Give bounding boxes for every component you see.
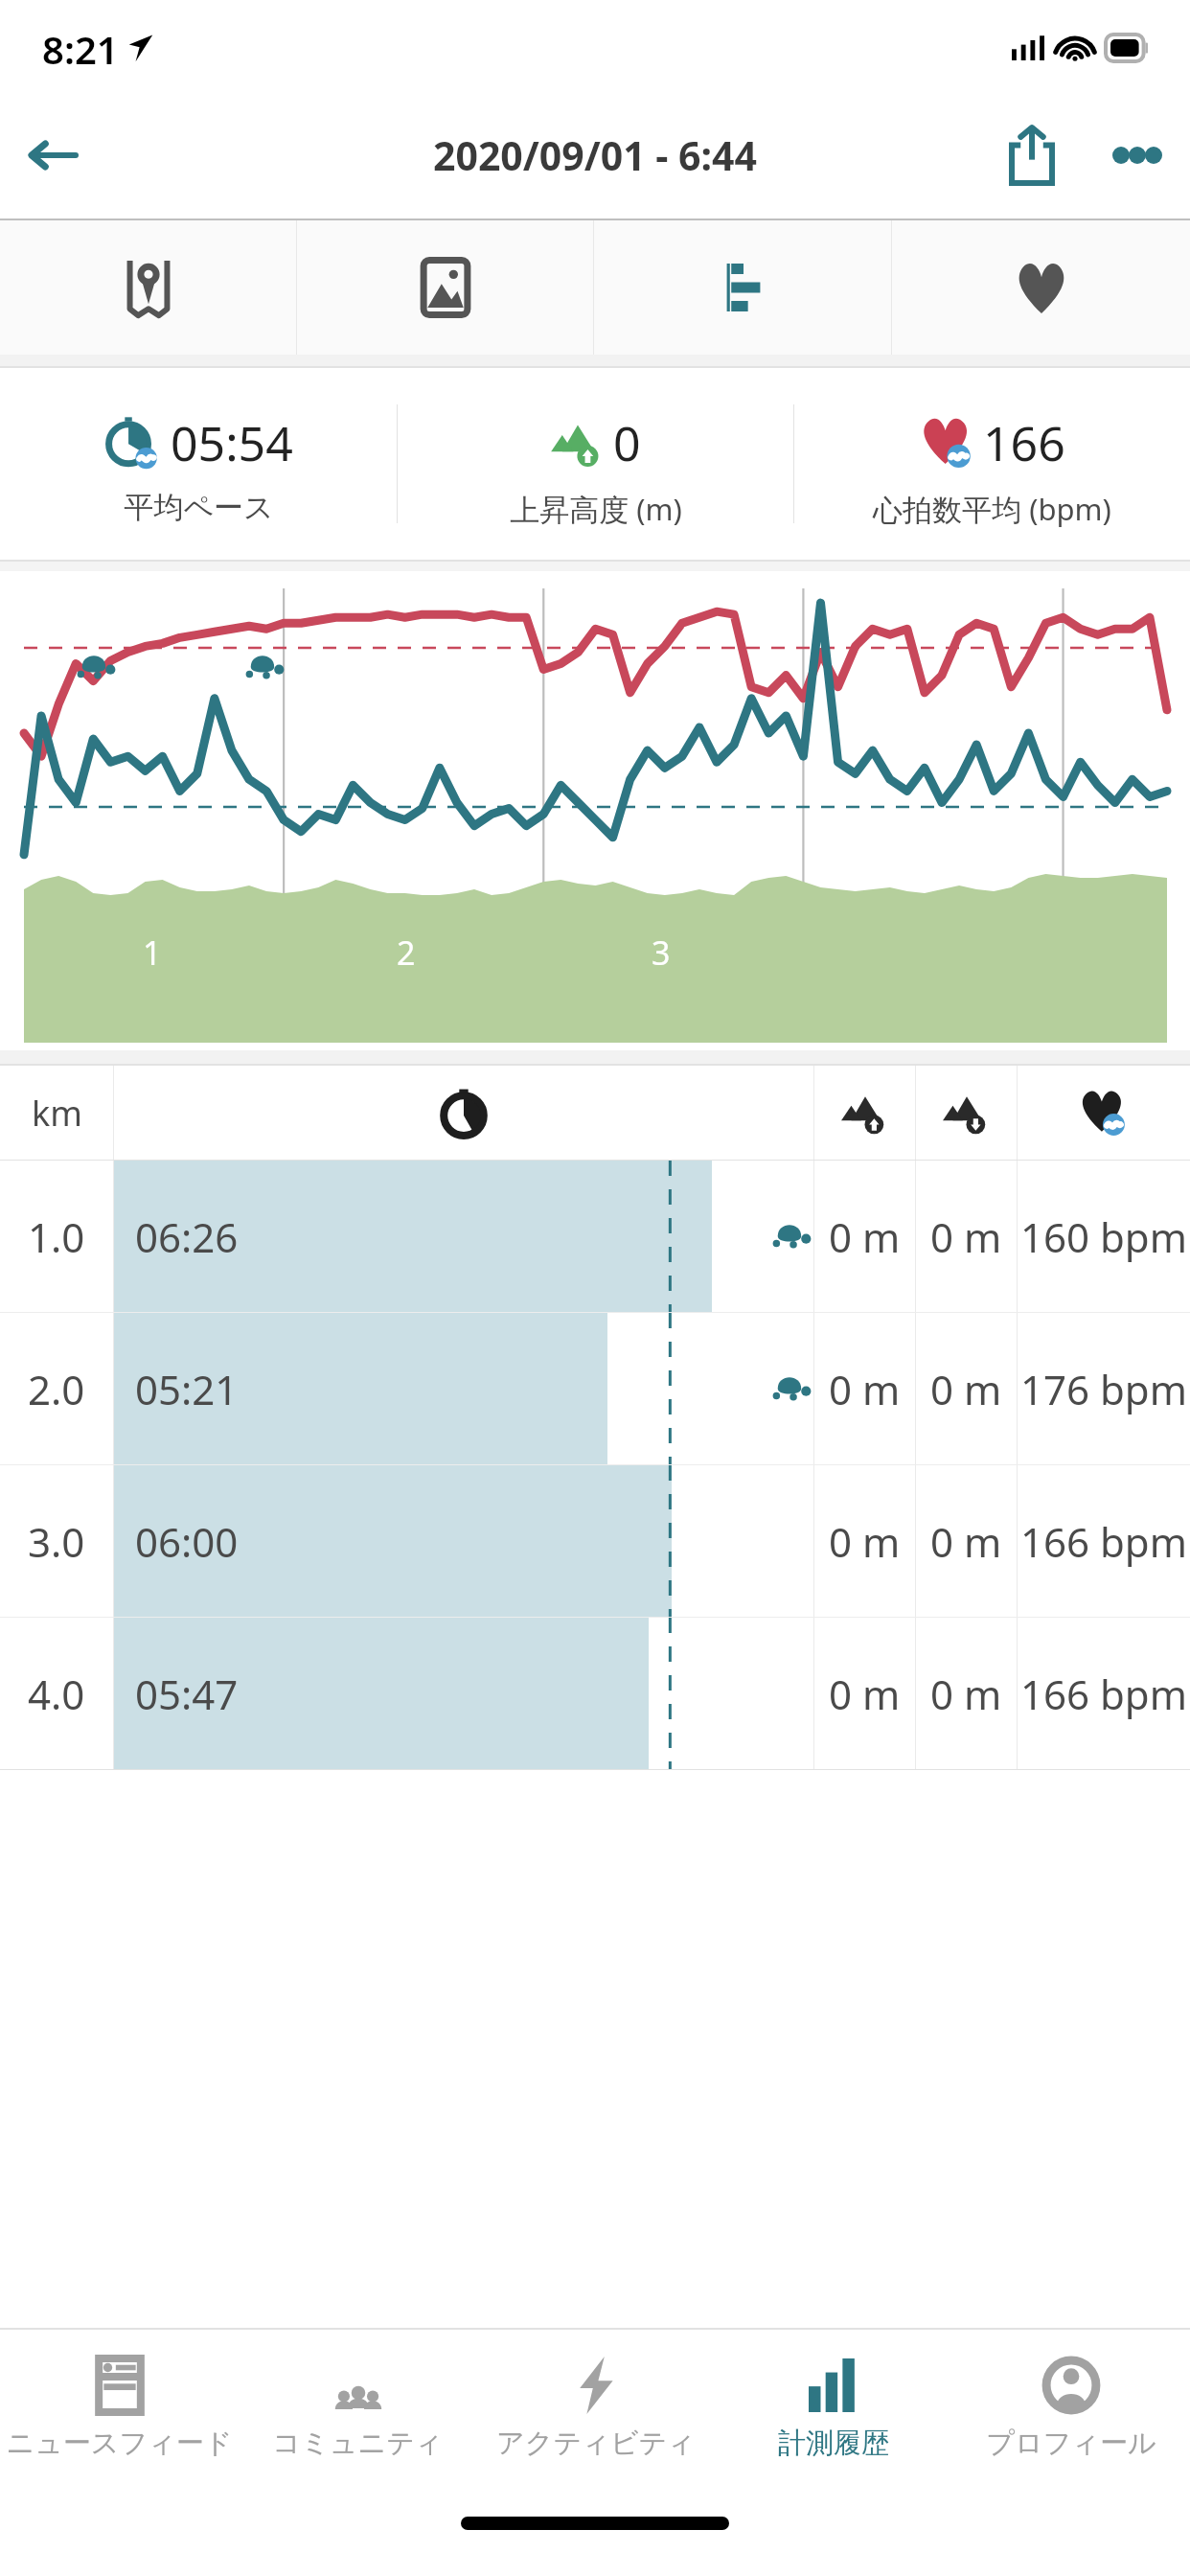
button[interactable]: Map [0,220,297,355]
button[interactable]: Photos [297,220,594,355]
staticText: アクティビティ [496,2426,696,2461]
button[interactable]: More options [1085,103,1190,208]
staticText: 176 bpm [1020,1362,1187,1416]
staticText: 心拍数平均 (bpm) [873,489,1111,529]
button[interactable]: km [0,1066,113,1160]
staticText: 05:21 [135,1362,239,1416]
staticText: 166 bpm [1020,1514,1187,1569]
staticText: 計測履歴 [778,2426,889,2461]
staticText: 0 m [930,1514,1002,1569]
button[interactable]: Stats [594,220,892,355]
staticText: 0 m [829,1514,901,1569]
staticText: 0 m [930,1209,1002,1264]
button[interactable] [916,1066,1017,1160]
staticText: 1.0 [28,1209,85,1264]
button[interactable]: 計測履歴 [715,2330,952,2497]
staticText: 05:47 [135,1667,239,1721]
staticText: 0 m [829,1362,901,1416]
staticText: コミュニティ [272,2426,444,2461]
button[interactable]: プロフィール [952,2330,1190,2497]
staticText: 8:21 [42,23,119,75]
staticText: km [32,1090,82,1137]
button[interactable]: 0 [398,368,793,560]
button[interactable]: 2.0 [0,1313,1190,1464]
button[interactable]: アクティビティ [477,2330,715,2497]
staticText: 166 bpm [1020,1667,1187,1721]
staticText: ニュースフィード [6,2426,233,2461]
staticText: 上昇高度 (m) [510,489,682,529]
staticText: 1 [143,931,162,975]
staticText: 0 m [930,1667,1002,1721]
button[interactable]: Back [0,103,105,208]
staticText: 06:00 [135,1514,239,1569]
button[interactable]: コミュニティ [239,2330,477,2497]
staticText: 2.0 [28,1362,85,1416]
staticText: 2020/09/01 - 6:44 [433,128,757,182]
button[interactable]: ニュースフィード [0,2330,239,2497]
button[interactable]: 3.0 [0,1465,1190,1617]
button[interactable]: 05:54 [0,368,397,560]
staticText: 4.0 [28,1667,85,1721]
staticText: 0 m [829,1209,901,1264]
button[interactable]: 4.0 [0,1618,1190,1769]
staticText: 0 m [829,1667,901,1721]
button[interactable] [814,1066,915,1160]
staticText: 160 bpm [1020,1209,1187,1264]
staticText: 0 m [930,1362,1002,1416]
button[interactable] [1018,1066,1190,1160]
staticText: 2 [397,931,416,975]
button[interactable]: Heart rate [892,220,1190,355]
staticText: 166 [983,410,1065,475]
button[interactable]: 166 [794,368,1190,560]
staticText: プロフィール [986,2426,1156,2461]
button[interactable]: 1.0 [0,1161,1190,1312]
staticText: 0 [613,410,641,475]
staticText: 3.0 [28,1514,85,1569]
staticText: 05:54 [171,410,293,475]
staticText: 平均ペース [124,489,274,526]
staticText: 06:26 [135,1209,239,1264]
button[interactable]: Share [979,103,1085,208]
staticText: 3 [652,931,671,975]
button[interactable] [114,1066,813,1160]
